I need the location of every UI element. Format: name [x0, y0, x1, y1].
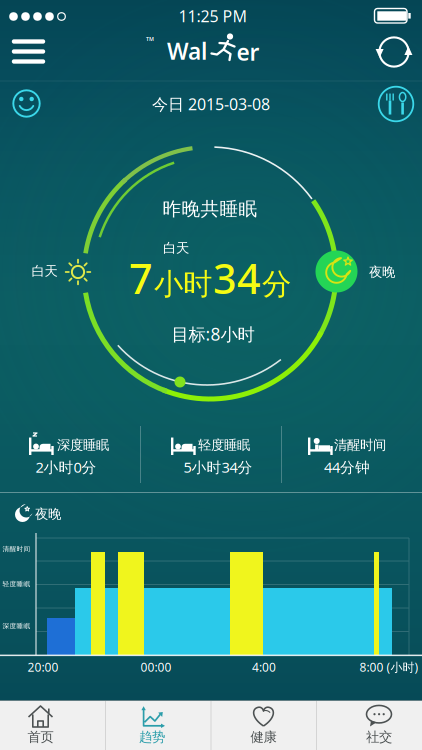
staticText: 目标:8小时 — [171, 322, 254, 345]
staticText: 8:00 (小时) — [359, 659, 418, 675]
staticText: 34 — [213, 251, 261, 305]
button[interactable]: Trends — [105, 700, 211, 750]
staticText: er — [236, 37, 259, 67]
staticText: 7 — [129, 251, 153, 305]
staticText: 深度睡眠 — [57, 437, 109, 453]
staticText: 白天 — [31, 263, 57, 279]
staticText: 小时 — [154, 266, 212, 302]
staticText: 00:00 — [140, 659, 171, 675]
staticText: 今日 2015-03-08 — [152, 93, 270, 115]
staticText: 健康 — [250, 729, 276, 745]
staticText: 昨晚共睡眠 — [162, 197, 257, 220]
staticText: 社交 — [366, 729, 392, 745]
staticText: TM — [146, 35, 154, 43]
button[interactable]: Sync — [368, 26, 420, 78]
button[interactable]: Meals — [373, 81, 419, 127]
staticText: 4:00 — [252, 659, 276, 675]
button[interactable]: Menu — [0, 25, 57, 77]
staticText: Wal — [167, 36, 207, 66]
staticText: 20:00 — [27, 659, 58, 675]
staticText: 夜晚 — [369, 264, 395, 280]
staticText: 2小时0分 — [35, 457, 96, 477]
staticText: 清醒时间 — [334, 437, 386, 453]
staticText: 轻度睡眠 — [2, 580, 30, 588]
staticText: 夜晚 — [35, 506, 61, 522]
staticText: 首页 — [27, 729, 53, 745]
staticText: 深度睡眠 — [2, 622, 30, 630]
staticText: 轻度睡眠 — [198, 437, 250, 453]
staticText: 44分钟 — [324, 457, 370, 477]
staticText: 清醒时间 — [2, 545, 30, 553]
button[interactable]: Health — [211, 700, 316, 750]
staticText: 5小时34分 — [183, 457, 252, 477]
staticText: 白天 — [163, 240, 189, 256]
button[interactable]: Home — [0, 700, 105, 750]
staticText: 分 — [262, 266, 291, 302]
button[interactable]: Mood — [4, 81, 48, 125]
button[interactable]: Social — [316, 700, 422, 750]
staticText: 11:25 PM — [178, 5, 247, 27]
staticText: 趋势 — [139, 729, 165, 745]
